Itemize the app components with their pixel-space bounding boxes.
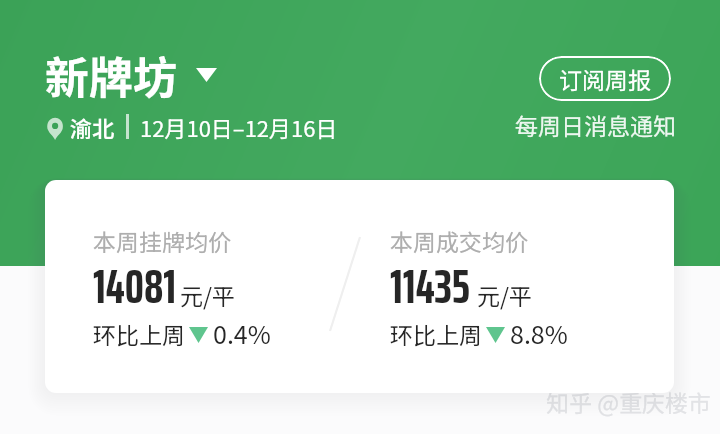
staticText: 环比上周 [390, 317, 482, 350]
button[interactable]: 本周挂牌均价 [93, 180, 329, 393]
staticText: 环比上周 [93, 317, 185, 350]
staticText: 知乎 @重庆楼市 [546, 385, 711, 418]
staticText: 元/平 [180, 278, 236, 311]
staticText: 8.8% [510, 315, 568, 351]
staticText: 12月10日–12月16日 [140, 111, 338, 143]
staticText: 订阅周报 [559, 62, 651, 95]
button[interactable]: 订阅周报 [539, 56, 671, 101]
staticText: 14081 [93, 249, 177, 325]
other: Change area [196, 68, 217, 82]
staticText: 本周挂牌均价 [93, 224, 231, 257]
staticText: 新牌坊 [45, 43, 177, 107]
button[interactable]: 新牌坊 [45, 43, 214, 107]
staticText: 每周日消息通知 [515, 108, 676, 141]
staticText: 0.4% [213, 315, 271, 351]
staticText: 元/平 [477, 278, 533, 311]
staticText: 本周成交均价 [390, 224, 528, 257]
button[interactable]: 本周成交均价 [390, 180, 626, 393]
staticText: 渝北 [70, 111, 115, 143]
staticText: 11435 [390, 249, 471, 325]
